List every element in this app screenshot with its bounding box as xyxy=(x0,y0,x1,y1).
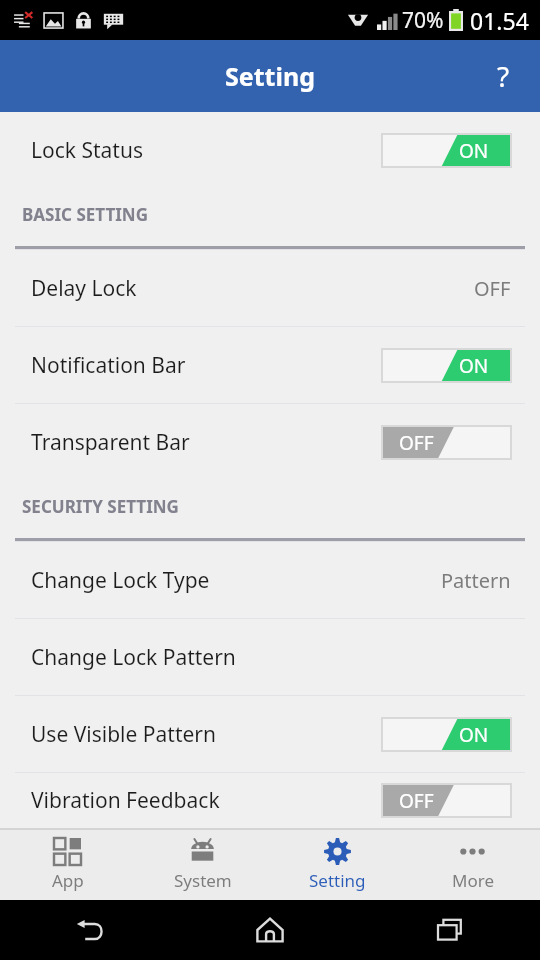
button[interactable]: Recent apps xyxy=(360,900,540,960)
staticText: Notification Bar xyxy=(31,351,186,380)
staticText: Change Lock Type xyxy=(31,566,210,595)
button[interactable]: Setting xyxy=(270,830,405,900)
staticText: Setting xyxy=(225,59,315,93)
staticText: Change Lock Pattern xyxy=(31,643,236,672)
staticText: Pattern xyxy=(441,567,511,594)
button[interactable]: Vibration Feedback xyxy=(0,773,540,828)
button[interactable]: Switch off xyxy=(382,426,511,459)
button[interactable]: App xyxy=(0,830,135,900)
button[interactable]: Switch off xyxy=(382,784,511,817)
staticText: OFF xyxy=(399,430,434,456)
button[interactable]: Notification Bar xyxy=(0,327,540,403)
staticText: ? xyxy=(497,57,510,95)
button[interactable]: System xyxy=(135,830,270,900)
button[interactable]: Change Lock Pattern xyxy=(0,619,540,695)
staticText: Delay Lock xyxy=(31,274,137,303)
staticText: More xyxy=(452,869,494,892)
button[interactable]: Transparent Bar xyxy=(0,404,540,480)
button[interactable]: Change Lock Type xyxy=(0,542,540,618)
staticText: Use Visible Pattern xyxy=(31,720,216,749)
staticText: ON xyxy=(459,353,489,379)
staticText: System xyxy=(174,869,232,892)
button[interactable]: Delay Lock xyxy=(0,250,540,326)
button[interactable]: Back xyxy=(0,900,180,960)
staticText: Transparent Bar xyxy=(31,428,190,457)
button[interactable]: Switch on xyxy=(382,718,511,751)
staticText: OFF xyxy=(474,275,511,302)
staticText: 01.54 xyxy=(470,5,529,36)
staticText: 70% xyxy=(402,6,444,35)
button[interactable]: Switch on xyxy=(382,349,511,382)
button[interactable]: Use Visible Pattern xyxy=(0,696,540,772)
staticText: SECURITY SETTING xyxy=(22,495,179,518)
staticText: Vibration Feedback xyxy=(31,786,220,815)
staticText: Lock Status xyxy=(31,136,143,165)
staticText: ON xyxy=(459,722,489,748)
staticText: Setting xyxy=(309,869,366,892)
button[interactable]: Help xyxy=(476,49,530,103)
button[interactable]: Switch on xyxy=(382,134,511,167)
button[interactable]: Home xyxy=(180,900,360,960)
button[interactable]: Lock Status xyxy=(0,112,540,188)
staticText: OFF xyxy=(399,788,434,814)
staticText: BASIC SETTING xyxy=(22,203,148,226)
button[interactable]: More xyxy=(405,830,540,900)
staticText: App xyxy=(52,869,84,892)
staticText: ON xyxy=(459,138,489,164)
